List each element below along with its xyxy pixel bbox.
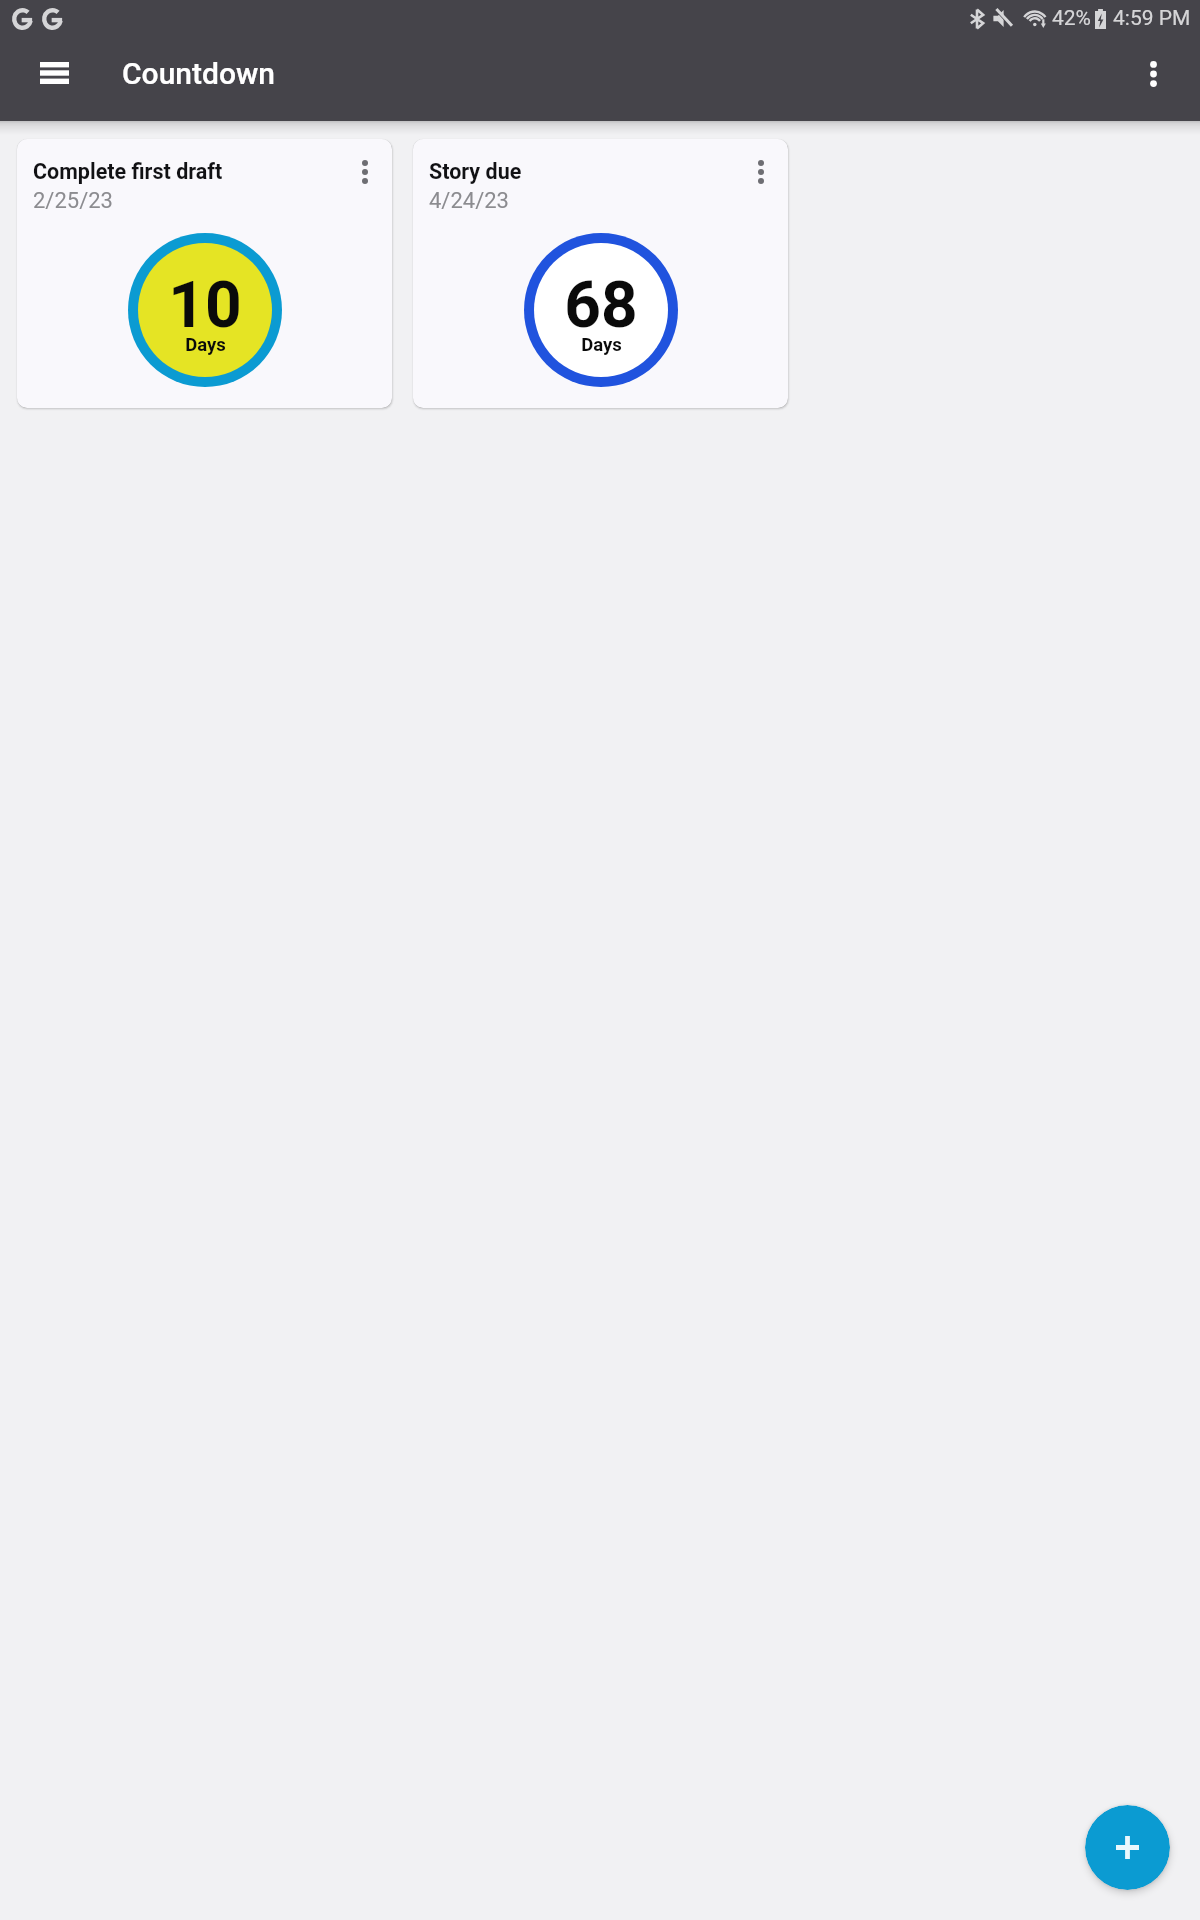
staticText: Complete first draft xyxy=(33,159,223,184)
staticText: 4:59 PM xyxy=(1113,6,1191,31)
staticText: 2/25/23 xyxy=(33,188,113,214)
staticText: 10 xyxy=(168,268,242,343)
button[interactable]: More options xyxy=(1117,38,1189,110)
staticText: 68 xyxy=(564,268,638,343)
button[interactable]: Open navigation menu xyxy=(18,37,90,109)
staticText: Countdown xyxy=(122,56,276,91)
button[interactable]: Complete first draft xyxy=(17,139,392,408)
staticText: Days xyxy=(185,334,226,356)
staticText: Days xyxy=(581,334,622,356)
button[interactable]: Card options xyxy=(734,145,788,199)
staticText: Story due xyxy=(429,159,522,184)
button[interactable]: Story due xyxy=(413,139,788,408)
button[interactable]: Add countdown xyxy=(1085,1805,1170,1890)
staticText: 42% xyxy=(1052,6,1091,31)
button[interactable]: Card options xyxy=(338,145,392,199)
staticText: 4/24/23 xyxy=(429,188,509,214)
